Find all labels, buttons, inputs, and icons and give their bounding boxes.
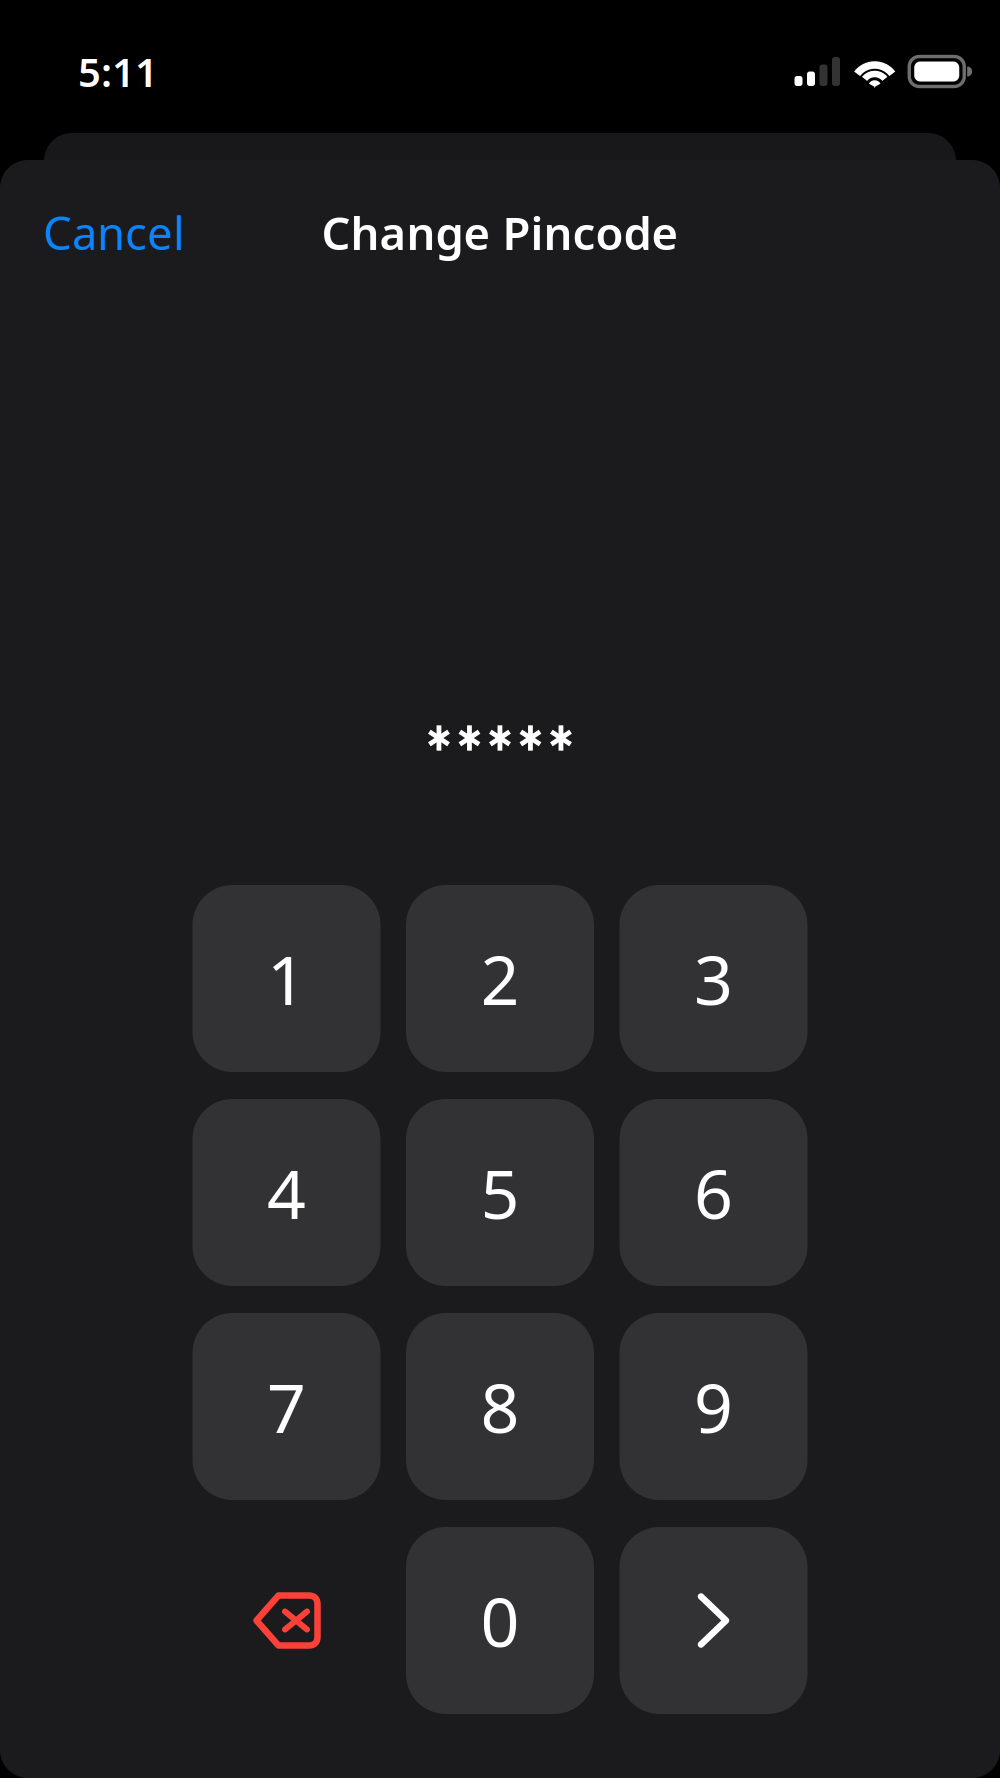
staticText: 3 (694, 933, 733, 1024)
button[interactable]: Delete (192, 1527, 380, 1714)
button[interactable]: 2 (406, 885, 594, 1072)
button[interactable]: Cancel (43, 188, 199, 277)
staticText: 7 (267, 1361, 306, 1452)
button[interactable]: 9 (619, 1313, 807, 1500)
button[interactable]: 7 (192, 1313, 380, 1500)
staticText: 4 (267, 1147, 306, 1238)
button[interactable]: 5 (406, 1099, 594, 1286)
button[interactable]: 6 (619, 1099, 807, 1286)
staticText: 9 (694, 1361, 733, 1452)
button[interactable]: 1 (192, 885, 380, 1072)
button[interactable]: 0 (406, 1527, 594, 1714)
staticText: 6 (694, 1147, 733, 1238)
button[interactable]: 4 (192, 1099, 380, 1286)
staticText: 2 (480, 933, 519, 1024)
staticText: 0 (480, 1575, 519, 1666)
staticText: 5:11 (78, 45, 158, 98)
button[interactable]: 8 (406, 1313, 594, 1500)
staticText: 5 (480, 1147, 519, 1238)
staticText: 1 (267, 933, 306, 1024)
staticText: 8 (480, 1361, 519, 1452)
button[interactable]: 3 (619, 885, 807, 1072)
button[interactable]: Submit (619, 1527, 807, 1714)
staticText: Cancel (43, 202, 185, 263)
staticText: Change Pincode (321, 202, 678, 263)
